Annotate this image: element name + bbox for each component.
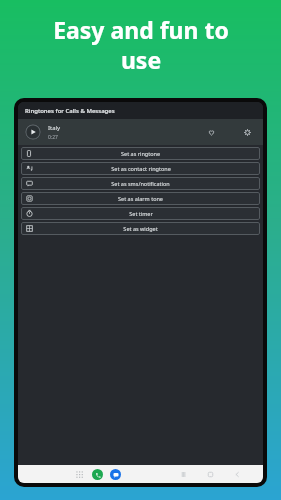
staticText: Set timer [129, 210, 153, 217]
button[interactable]: Messages [110, 469, 121, 480]
button[interactable]: Set as ringtone [21, 147, 260, 160]
button[interactable]: Settings [240, 125, 254, 139]
button[interactable]: Set timer [21, 207, 260, 220]
button[interactable]: Recents [178, 469, 189, 480]
staticText: 0:27 [48, 134, 58, 141]
staticText: Easy and fun to use [53, 14, 229, 75]
button[interactable]: Back [232, 469, 243, 480]
staticText: Set as alarm tone [118, 195, 163, 202]
staticText: Set as contact ringtone [111, 165, 171, 172]
staticText: Set as ringtone [121, 150, 160, 157]
button[interactable]: Home [205, 469, 216, 480]
button[interactable]: Phone [92, 469, 103, 480]
button[interactable]: Favorite [204, 125, 218, 139]
button[interactable]: Play [25, 124, 41, 140]
button[interactable]: Play [18, 119, 263, 145]
button[interactable]: Set as sms/notification [21, 177, 260, 190]
button[interactable]: All apps [74, 469, 85, 480]
staticText: Italy [48, 124, 61, 132]
button[interactable]: Set as alarm tone [21, 192, 260, 205]
staticText: Set as widget [123, 225, 158, 232]
staticText: Set as sms/notification [111, 180, 170, 187]
staticText: Ringtones for Calls & Messages [25, 107, 115, 115]
button[interactable]: Set as widget [21, 222, 260, 235]
button[interactable]: Set as contact ringtone [21, 162, 260, 175]
